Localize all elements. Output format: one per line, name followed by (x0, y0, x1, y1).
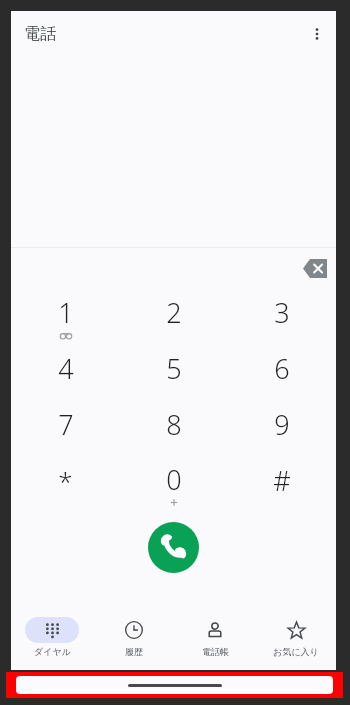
staticText: 0 (166, 461, 182, 498)
staticText: 4 (58, 350, 74, 387)
button[interactable]: Call (148, 522, 199, 573)
button[interactable]: 9 (228, 400, 336, 456)
button[interactable]: 0 (120, 456, 228, 512)
staticText: 8 (166, 406, 182, 443)
staticText: 電話帳 (202, 646, 229, 657)
button[interactable]: 4 (11, 344, 120, 400)
staticText: 3 (274, 294, 290, 331)
button[interactable]: 履歴 (93, 612, 174, 670)
button[interactable]: 7 (11, 400, 120, 456)
button[interactable]: 2 (120, 288, 228, 344)
button[interactable]: お気に入り (255, 612, 336, 670)
staticText: * (58, 463, 73, 498)
staticText: 2 (166, 294, 182, 331)
button[interactable]: * (11, 456, 120, 512)
staticText: 5 (166, 350, 182, 387)
staticText: 電話 (24, 24, 56, 44)
button[interactable]: 電話帳 (174, 612, 255, 670)
staticText: 1 (58, 294, 74, 331)
button[interactable]: ダイヤル (11, 612, 93, 670)
staticText: 6 (274, 350, 290, 387)
button[interactable]: 3 (228, 288, 336, 344)
staticText: # (273, 462, 291, 499)
staticText: 9 (274, 406, 290, 443)
button[interactable]: 8 (120, 400, 228, 456)
button[interactable]: 5 (120, 344, 228, 400)
button[interactable]: 6 (228, 344, 336, 400)
staticText: お気に入り (273, 646, 319, 657)
button[interactable]: # (228, 456, 336, 512)
button[interactable]: Backspace (299, 251, 333, 285)
staticText: 履歴 (125, 646, 143, 657)
button[interactable]: 1 (11, 288, 120, 344)
staticText: ダイヤル (34, 646, 71, 657)
button[interactable]: More options (305, 14, 329, 54)
staticText: 7 (58, 406, 74, 443)
